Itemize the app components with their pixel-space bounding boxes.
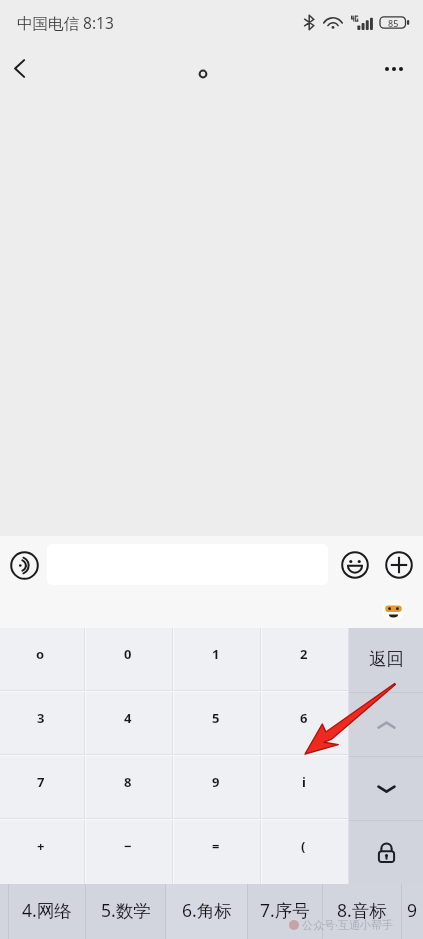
button[interactable]: 返回 <box>349 628 423 692</box>
button[interactable]: 4 <box>86 692 172 756</box>
button[interactable]: 6.角标 <box>166 884 247 939</box>
button[interactable]: i <box>262 756 348 820</box>
button[interactable]: 7 <box>0 756 84 820</box>
button[interactable]: Emoji <box>333 543 377 587</box>
staticText: 8.音标 <box>337 898 387 922</box>
button[interactable]: Back <box>0 45 38 95</box>
staticText: + <box>37 837 45 855</box>
staticText: 公众号·互通小帮手 <box>302 917 393 932</box>
staticText: 6 <box>300 709 308 727</box>
button[interactable]: Next page <box>349 757 423 820</box>
button[interactable]: 3 <box>0 692 84 756</box>
staticText: 中国电信 8:13 <box>17 12 114 33</box>
staticText: o <box>36 645 45 663</box>
button[interactable]: Add <box>377 543 421 587</box>
staticText: 6.角标 <box>182 898 232 922</box>
staticText: 1 <box>212 645 220 663</box>
staticText: 85 <box>388 17 399 29</box>
staticText: 7.序号 <box>260 898 310 922</box>
button[interactable]: Previous page <box>349 693 423 756</box>
button[interactable]: 6 <box>262 692 348 756</box>
button[interactable]: ( <box>262 820 348 884</box>
button[interactable]: 1 <box>174 628 260 692</box>
staticText: 8 <box>124 773 132 791</box>
button[interactable]: 8.音标 <box>323 884 401 939</box>
button[interactable]: + <box>0 820 84 884</box>
staticText: 5 <box>212 709 220 727</box>
staticText: 0 <box>124 645 132 663</box>
button[interactable]: 9 <box>402 884 423 939</box>
button[interactable]: 2 <box>262 628 348 692</box>
staticText: 4 <box>124 709 132 727</box>
button[interactable]: 4.网络 <box>9 884 85 939</box>
button[interactable]: − <box>86 820 172 884</box>
staticText: 7 <box>37 773 45 791</box>
staticText: − <box>124 837 132 855</box>
button[interactable]: 0 <box>86 628 172 692</box>
button[interactable]: Sticker <box>382 599 405 622</box>
staticText: = <box>212 837 220 855</box>
staticText: 5.数学 <box>101 898 151 922</box>
button[interactable]: 5.数学 <box>86 884 165 939</box>
staticText: 9 <box>212 773 220 791</box>
staticText: 4.网络 <box>22 898 72 922</box>
staticText: 返回 <box>369 648 404 670</box>
button[interactable]: o <box>0 628 84 692</box>
staticText: ( <box>301 837 306 855</box>
button[interactable]: 7.序号 <box>248 884 322 939</box>
button[interactable]: 8 <box>86 756 172 820</box>
staticText: i <box>302 773 306 791</box>
button[interactable]: More options <box>379 45 423 95</box>
button[interactable]: Lock keyboard <box>349 821 423 884</box>
staticText: 3 <box>37 709 45 727</box>
button[interactable]: 5 <box>174 692 260 756</box>
button[interactable]: = <box>174 820 260 884</box>
staticText: 2 <box>300 645 308 663</box>
button[interactable]: 9 <box>174 756 260 820</box>
staticText: 9 <box>407 898 418 922</box>
button[interactable]: Voice input <box>2 543 46 587</box>
